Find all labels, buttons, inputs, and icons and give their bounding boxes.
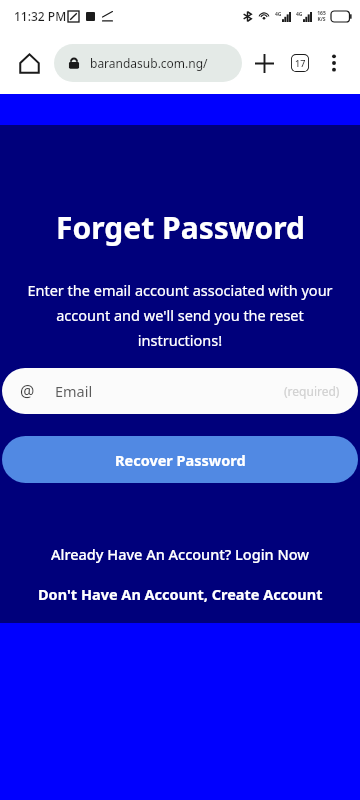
staticText: Already Have An Account? Login Now [51, 544, 309, 564]
button[interactable]: New tab [246, 45, 282, 81]
staticText: 11:32 PM [14, 8, 67, 24]
staticText: Enter the email account associated with … [14, 280, 346, 350]
staticText: 17 [295, 57, 306, 69]
staticText: Email [55, 381, 93, 401]
staticText: @ [20, 380, 35, 402]
staticText: 4G [296, 11, 303, 18]
button[interactable]: More options [318, 47, 350, 79]
button[interactable]: barandasub.com.ng/mobile/re [54, 44, 242, 82]
staticText: 165 K/S [317, 10, 326, 23]
button[interactable]: Already Have An Account? Login Now [0, 540, 360, 568]
staticText: Forget Password [56, 207, 305, 248]
button[interactable]: @ [2, 368, 358, 414]
button[interactable]: Don't Have An Account, Create Account [0, 580, 360, 608]
button[interactable]: Home [10, 44, 48, 82]
button[interactable]: Recover Password [2, 436, 358, 483]
staticText: barandasub.com.ng/mobile/re [90, 55, 232, 71]
staticText: 4G [275, 11, 282, 18]
staticText: Recover Password [115, 450, 246, 470]
button[interactable]: Tabs, 17 open [282, 45, 318, 81]
staticText: Don't Have An Account, Create Account [38, 584, 323, 604]
staticText: (required) [284, 383, 340, 399]
